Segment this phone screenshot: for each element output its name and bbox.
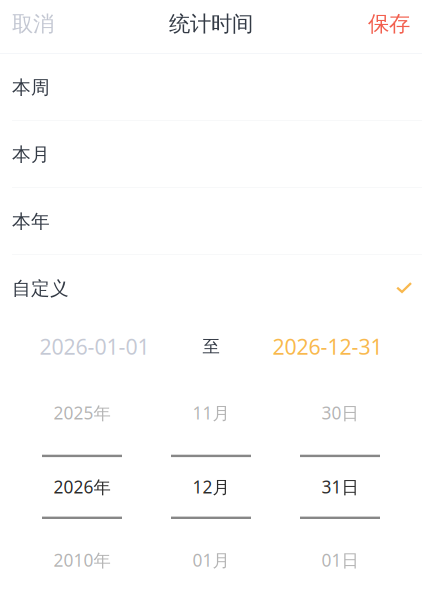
- button[interactable]: 本周: [0, 54, 422, 121]
- button[interactable]: 本月: [0, 121, 422, 188]
- staticText: 12月: [192, 475, 229, 498]
- staticText: 2025年: [53, 401, 110, 424]
- staticText: 2026-01-01: [39, 332, 149, 361]
- staticText: 2010年: [53, 548, 110, 571]
- button[interactable]: 2026年: [17, 457, 146, 517]
- button[interactable]: 12月: [146, 457, 275, 517]
- button[interactable]: 30日: [275, 371, 404, 455]
- staticText: 01月: [192, 548, 229, 571]
- button[interactable]: 11月: [146, 371, 275, 455]
- staticText: 本周: [12, 76, 50, 99]
- staticText: 统计时间: [169, 11, 253, 37]
- button[interactable]: 31日: [275, 457, 404, 517]
- button[interactable]: 2010年: [17, 519, 146, 591]
- staticText: 保存: [368, 11, 410, 37]
- staticText: 自定义: [12, 277, 69, 300]
- button[interactable]: 本年: [0, 188, 422, 255]
- button[interactable]: 自定义: [0, 255, 422, 322]
- staticText: 31日: [321, 475, 358, 498]
- staticText: 取消: [12, 11, 54, 37]
- button[interactable]: 2026-12-31: [233, 322, 422, 371]
- button[interactable]: 01月: [146, 519, 275, 591]
- button[interactable]: 取消: [0, 0, 66, 48]
- staticText: 本月: [12, 143, 50, 166]
- staticText: 11月: [192, 401, 229, 424]
- button[interactable]: 01日: [275, 519, 404, 591]
- button[interactable]: 2026-01-01: [0, 322, 189, 371]
- staticText: 2026年: [53, 475, 110, 498]
- button[interactable]: 保存: [356, 0, 422, 48]
- staticText: 本年: [12, 210, 50, 233]
- staticText: 至: [202, 336, 219, 357]
- staticText: 30日: [321, 401, 358, 424]
- button[interactable]: 2025年: [17, 371, 146, 455]
- staticText: 01日: [321, 548, 358, 571]
- staticText: 2026-12-31: [272, 332, 382, 361]
